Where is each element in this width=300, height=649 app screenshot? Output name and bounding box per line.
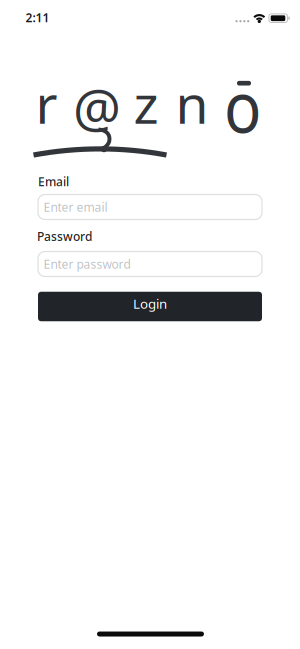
staticText: z xyxy=(133,68,158,138)
staticText: @ xyxy=(73,72,121,142)
staticText: Password xyxy=(37,228,92,244)
staticText: o xyxy=(221,57,265,153)
staticText: Enter email xyxy=(43,199,107,215)
staticText: 2:11 xyxy=(25,9,49,25)
staticText: Enter password xyxy=(43,256,130,272)
button[interactable]: Enter password xyxy=(38,251,262,276)
staticText: n xyxy=(175,68,208,138)
button[interactable]: Enter email xyxy=(38,194,262,219)
staticText: r xyxy=(35,68,57,138)
staticText: Login xyxy=(133,295,167,312)
staticText: Email xyxy=(38,173,69,189)
button[interactable]: Login xyxy=(38,292,262,321)
